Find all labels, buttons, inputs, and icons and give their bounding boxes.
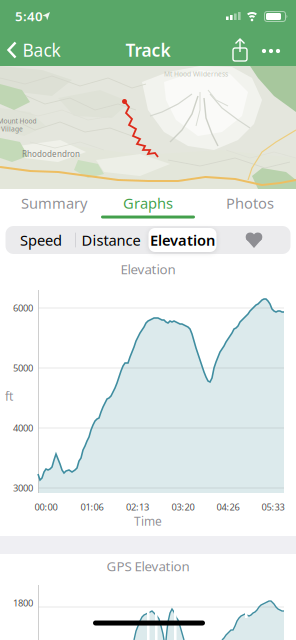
staticText: 1800 [13, 597, 33, 609]
staticText: Graphs [123, 193, 173, 213]
button[interactable]: Distance [77, 226, 145, 254]
button[interactable]: Favorite [244, 231, 264, 248]
staticText: 00:00 [34, 501, 57, 513]
staticText: Elevation [120, 260, 175, 278]
button[interactable]: Summary [5, 189, 103, 217]
staticText: 03:20 [171, 501, 194, 513]
staticText: Back [22, 38, 60, 61]
staticText: Village [1, 125, 23, 133]
button[interactable]: Share [231, 38, 249, 62]
staticText: 01:06 [80, 501, 103, 513]
staticText: Elevation [150, 230, 215, 250]
staticText: 5:40 [15, 7, 43, 25]
button[interactable]: Elevation [148, 226, 216, 254]
staticText: Mount Hood [0, 117, 36, 125]
button[interactable]: Graphs [99, 189, 197, 217]
staticText: 3000 [13, 482, 33, 494]
staticText: 4000 [13, 422, 33, 434]
staticText: Summary [21, 193, 87, 213]
staticText: ft [5, 388, 13, 404]
button[interactable]: Speed [7, 226, 75, 254]
staticText: Mt Hood Wilderness [164, 70, 228, 78]
staticText: 5000 [13, 362, 33, 374]
staticText: GPS Elevation [106, 557, 189, 575]
staticText: 6000 [13, 302, 33, 314]
staticText: Track [125, 38, 170, 61]
staticText: Photos [226, 193, 274, 213]
staticText: Rhododendron [22, 149, 80, 159]
staticText: Speed [20, 230, 62, 250]
button[interactable]: More [262, 49, 280, 53]
button[interactable]: Back [7, 38, 60, 61]
staticText: Distance [81, 230, 140, 250]
button[interactable]: Photos [201, 189, 296, 217]
staticText: 05:33 [261, 501, 284, 513]
staticText: Time [134, 513, 162, 529]
staticText: 04:26 [216, 501, 239, 513]
staticText: 02:13 [126, 501, 149, 513]
